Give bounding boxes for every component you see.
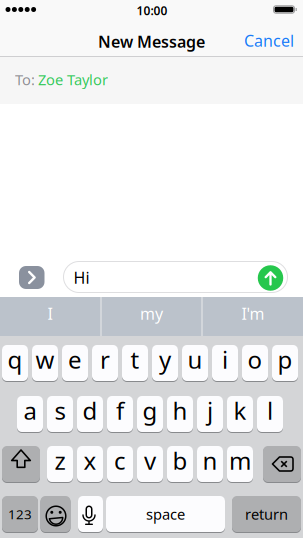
button[interactable]: Cancel: [244, 30, 294, 51]
staticText: c: [114, 445, 126, 476]
button[interactable]: d: [77, 395, 103, 432]
staticText: q: [7, 344, 22, 375]
button[interactable]: x: [77, 445, 103, 482]
button[interactable]: q: [2, 344, 28, 381]
button[interactable]: l: [257, 395, 283, 432]
button[interactable]: g: [137, 395, 163, 432]
button[interactable]: z: [47, 445, 73, 482]
button[interactable]: Send: [258, 265, 283, 291]
staticText: y: [159, 344, 171, 375]
staticText: k: [233, 395, 246, 426]
button[interactable]: my: [102, 297, 201, 336]
button[interactable]: Emoji: [40, 495, 70, 532]
staticText: h: [172, 395, 187, 426]
staticText: u: [187, 344, 202, 375]
button[interactable]: o: [242, 344, 268, 381]
staticText: return: [245, 504, 288, 524]
staticText: my: [140, 303, 163, 324]
staticText: d: [82, 395, 97, 426]
button[interactable]: w: [32, 344, 58, 381]
button[interactable]: p: [272, 344, 298, 381]
button[interactable]: h: [167, 395, 193, 432]
staticText: g: [142, 395, 157, 426]
button[interactable]: i: [212, 344, 238, 381]
staticText: Hi: [73, 267, 89, 288]
staticText: m: [229, 445, 251, 476]
staticText: o: [247, 344, 262, 375]
button[interactable]: f: [107, 395, 133, 432]
staticText: r: [100, 344, 110, 375]
staticText: p: [277, 344, 292, 375]
button[interactable]: I'm: [203, 297, 303, 336]
button[interactable]: v: [137, 445, 163, 482]
button[interactable]: space: [106, 495, 225, 532]
button[interactable]: s: [47, 395, 73, 432]
staticText: t: [130, 344, 139, 375]
button[interactable]: I: [0, 297, 100, 336]
staticText: l: [267, 395, 273, 426]
button[interactable]: e: [62, 344, 88, 381]
button[interactable]: m: [227, 445, 253, 482]
staticText: b: [172, 445, 187, 476]
button[interactable]: n: [197, 445, 223, 482]
staticText: z: [54, 445, 65, 476]
button[interactable]: k: [227, 395, 253, 432]
staticText: x: [83, 445, 96, 476]
staticText: Zoe Taylor: [38, 70, 108, 89]
staticText: I: [47, 303, 52, 324]
button[interactable]: r: [92, 344, 118, 381]
button[interactable]: j: [197, 395, 223, 432]
staticText: 123: [8, 505, 32, 523]
staticText: e: [68, 344, 82, 375]
staticText: i: [222, 344, 228, 375]
staticText: n: [202, 445, 217, 476]
button[interactable]: t: [122, 344, 148, 381]
button[interactable]: 123: [2, 495, 38, 532]
button[interactable]: Shift: [2, 445, 40, 482]
staticText: s: [54, 395, 65, 426]
staticText: I'm: [241, 303, 264, 324]
button[interactable]: return: [232, 495, 301, 532]
button[interactable]: y: [152, 344, 178, 381]
staticText: New Message: [98, 31, 205, 52]
button[interactable]: c: [107, 445, 133, 482]
staticText: To:: [15, 70, 35, 89]
button[interactable]: To:: [0, 56, 303, 103]
staticText: space: [146, 504, 185, 524]
button[interactable]: b: [167, 445, 193, 482]
staticText: a: [23, 395, 36, 426]
button[interactable]: Dictate: [78, 495, 103, 532]
button[interactable]: a: [17, 395, 43, 432]
staticText: v: [144, 445, 156, 476]
staticText: 10:00: [136, 2, 167, 18]
staticText: w: [35, 344, 54, 375]
button[interactable]: Hi: [63, 261, 288, 293]
staticText: f: [116, 395, 124, 426]
button[interactable]: Delete: [263, 445, 301, 482]
staticText: Cancel: [244, 30, 294, 51]
button[interactable]: u: [182, 344, 208, 381]
staticText: j: [207, 395, 213, 426]
button[interactable]: More options: [19, 266, 44, 289]
